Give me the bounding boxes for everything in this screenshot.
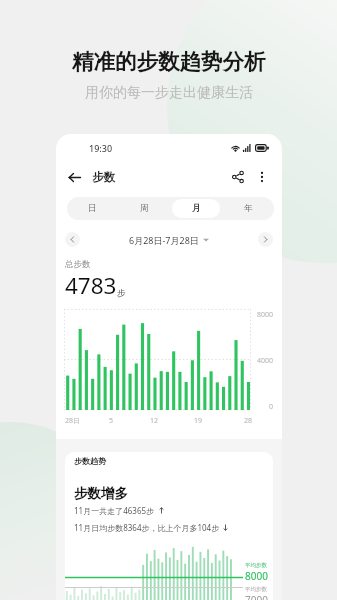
staticText: 步数 (92, 170, 115, 184)
staticText: 平均步数 (245, 562, 267, 569)
button[interactable]: 6月28日-7月28日 (127, 232, 211, 248)
staticText: 步数趋势 (74, 456, 106, 466)
staticText: 6月28日-7月28日 (129, 234, 199, 246)
staticText: 28 (244, 416, 253, 426)
staticText: 0 (269, 402, 274, 412)
staticText: 28日 (65, 416, 81, 426)
staticText: 总步数 (65, 259, 91, 270)
button[interactable]: 周 (120, 199, 168, 218)
button[interactable]: 年 (224, 199, 272, 218)
staticText: 8000 (245, 569, 268, 583)
staticText: 日 (88, 203, 97, 214)
button[interactable]: Share (227, 166, 249, 188)
staticText: 4000 (257, 356, 274, 366)
staticText: 11月一共走了46365步 (74, 505, 155, 516)
button[interactable]: Back (63, 166, 85, 188)
staticText: 19:30 (89, 142, 113, 154)
staticText: 精准的步数趋势分析 (72, 48, 266, 75)
staticText: 5 (109, 416, 114, 426)
staticText: 11月日均步数8364步，比上个月多104步 (74, 522, 220, 533)
staticText: 平均步数 (245, 586, 267, 593)
staticText: 月 (192, 203, 201, 214)
staticText: 7000 (245, 593, 268, 600)
staticText: 8000 (257, 310, 274, 320)
staticText: 年 (244, 203, 253, 214)
button[interactable]: 日 (69, 199, 116, 218)
staticText: 步 (117, 288, 126, 299)
button[interactable]: 月 (172, 199, 220, 218)
button[interactable]: Next period (258, 232, 273, 247)
button[interactable]: Previous period (65, 232, 80, 247)
staticText: 用你的每一步走出健康生活 (85, 84, 253, 102)
staticText: 周 (140, 203, 149, 214)
staticText: 19 (194, 416, 203, 426)
button[interactable]: More options (251, 166, 273, 188)
staticText: 4783 (65, 270, 117, 301)
staticText: 12 (150, 416, 159, 426)
staticText: 步数增多 (74, 485, 128, 502)
